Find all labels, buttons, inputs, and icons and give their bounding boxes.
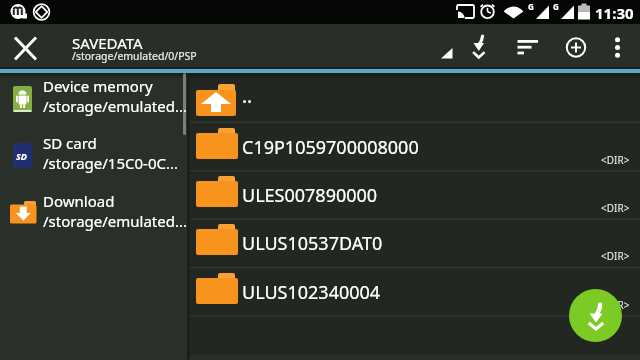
button[interactable]: ULUS102340004 (190, 267, 640, 315)
button[interactable]: Download (0, 190, 187, 246)
staticText: <DIR> (601, 153, 630, 167)
staticText: Device memory (43, 76, 153, 96)
staticText: ULES007890000 (242, 183, 378, 208)
staticText: 11:30 (595, 3, 634, 23)
button[interactable] (508, 28, 545, 65)
button[interactable]: SAVEDATA (60, 24, 320, 69)
staticText: SD (16, 150, 27, 162)
staticText: G (553, 1, 559, 12)
button[interactable] (461, 28, 498, 65)
button[interactable]: ULUS10537DAT0 (190, 218, 640, 266)
button[interactable]: SD (0, 132, 187, 188)
staticText: C19P1059700008000 (242, 135, 419, 160)
button[interactable]: Device memory (0, 75, 187, 131)
staticText: G (528, 1, 534, 12)
button[interactable] (558, 29, 594, 65)
staticText: /storage/emulated... (43, 211, 188, 231)
staticText: /storage/15C0-0C... (43, 153, 179, 173)
button[interactable] (8, 31, 44, 67)
staticText: <DIR> (601, 249, 630, 263)
staticText: SAVEDATA (72, 33, 143, 53)
staticText: <DIR> (601, 201, 630, 215)
staticText: <DIR> (601, 298, 630, 312)
staticText: .. (242, 83, 253, 109)
staticText: /storage/emulated... (43, 96, 188, 116)
staticText: ULUS102340004 (242, 280, 381, 305)
staticText: ULUS10537DAT0 (242, 231, 383, 256)
button[interactable] (569, 289, 622, 342)
button[interactable]: C19P1059700008000 (190, 122, 640, 170)
staticText: SD card (43, 133, 97, 153)
button[interactable] (600, 29, 636, 65)
button[interactable]: ULES007890000 (190, 170, 640, 218)
staticText: /storage/emulated/0/PSP (72, 49, 197, 63)
staticText: Download (43, 191, 115, 211)
button[interactable]: .. (190, 73, 640, 121)
